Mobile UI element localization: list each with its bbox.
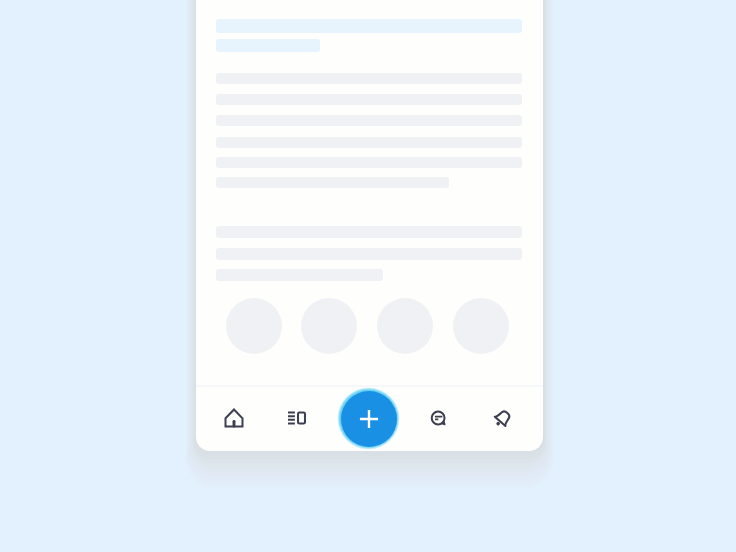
button[interactable]: Notifications xyxy=(472,386,534,450)
button[interactable]: Home xyxy=(203,386,265,450)
button[interactable]: Avatar xyxy=(301,298,357,354)
button[interactable]: Avatar xyxy=(377,298,433,354)
button[interactable]: Feed xyxy=(266,386,328,450)
button[interactable]: Add xyxy=(341,391,397,447)
button[interactable]: Avatar xyxy=(453,298,509,354)
button[interactable]: Avatar xyxy=(226,298,282,354)
button[interactable]: Messages xyxy=(408,386,470,450)
